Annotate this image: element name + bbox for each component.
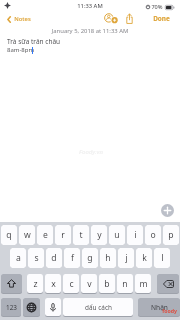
button[interactable]: Nhận — [138, 298, 180, 316]
button[interactable]: u — [109, 225, 125, 245]
staticText: w — [24, 229, 31, 241]
button[interactable]: i — [127, 225, 143, 245]
button[interactable]: g — [82, 248, 98, 268]
other: Shift — [7, 279, 16, 288]
staticText: 8am-8pm — [7, 46, 35, 54]
staticText: 11:33 AM — [77, 2, 103, 10]
button[interactable]: k — [136, 248, 152, 268]
button[interactable]: n — [117, 274, 133, 293]
staticText: e — [43, 229, 48, 241]
other: Switch keyboard — [27, 303, 36, 312]
staticText: l — [161, 252, 164, 264]
button[interactable]: Share — [125, 13, 134, 24]
button[interactable]: dấu cách — [63, 298, 133, 316]
button[interactable]: t — [73, 225, 89, 245]
staticText: x — [51, 278, 56, 290]
button[interactable]: l — [154, 248, 170, 268]
button[interactable]: Notes — [7, 15, 31, 23]
button[interactable]: Switch keyboard — [23, 298, 40, 316]
staticText: m — [139, 278, 148, 290]
button[interactable]: 123 — [1, 298, 21, 316]
staticText: Done — [153, 14, 170, 23]
staticText: k — [142, 252, 147, 264]
staticText: t — [79, 229, 83, 241]
button[interactable]: Add People — [104, 13, 118, 23]
staticText: r — [61, 229, 65, 241]
staticText: z — [33, 278, 38, 290]
button[interactable]: j — [118, 248, 134, 268]
button[interactable]: f — [64, 248, 80, 268]
staticText: u — [114, 229, 120, 241]
staticText: January 5, 2018 at 11:33 AM — [0, 27, 180, 35]
staticText: 123 — [6, 303, 17, 312]
button[interactable]: r — [55, 225, 71, 245]
button[interactable]: y — [91, 225, 107, 245]
button[interactable]: h — [100, 248, 116, 268]
staticText: y — [97, 229, 102, 241]
staticText: 70% — [151, 3, 163, 11]
staticText: Foody.vn — [79, 148, 103, 156]
button[interactable]: Dictation — [45, 298, 61, 316]
staticText: f — [71, 252, 74, 264]
staticText: q — [6, 229, 12, 241]
staticText: o — [150, 229, 156, 241]
button[interactable]: s — [28, 248, 44, 268]
staticText: h — [105, 252, 111, 264]
button[interactable]: v — [81, 274, 97, 293]
button[interactable]: x — [45, 274, 61, 293]
button[interactable]: d — [46, 248, 62, 268]
button[interactable]: Shift — [1, 274, 22, 293]
staticText: c — [69, 278, 74, 290]
button[interactable]: Delete — [157, 274, 179, 293]
button[interactable]: m — [135, 274, 151, 293]
staticText: s — [34, 252, 39, 264]
button[interactable]: p — [163, 225, 179, 245]
button[interactable]: Done — [153, 14, 170, 23]
staticText: Trà sữa trân châu — [7, 37, 61, 46]
other: Delete — [163, 280, 174, 288]
staticText: a — [16, 252, 21, 264]
staticText: d — [51, 252, 57, 264]
button[interactable]: a — [10, 248, 26, 268]
button[interactable]: c — [63, 274, 79, 293]
button[interactable]: w — [19, 225, 35, 245]
staticText: b — [104, 278, 110, 290]
button[interactable]: z — [27, 274, 43, 293]
staticText: i — [134, 229, 137, 241]
staticText: foody — [162, 307, 177, 314]
staticText: Notes — [14, 15, 31, 23]
staticText: Nhận — [151, 303, 168, 312]
button[interactable]: b — [99, 274, 115, 293]
button[interactable]: Add attachment — [161, 204, 174, 217]
staticText: dấu cách — [85, 303, 112, 312]
staticText: p — [168, 229, 174, 241]
staticText: n — [122, 278, 128, 290]
staticText: j — [125, 252, 128, 264]
staticText: v — [87, 278, 92, 290]
button[interactable]: e — [37, 225, 53, 245]
button[interactable]: q — [1, 225, 17, 245]
staticText: g — [87, 252, 93, 264]
button[interactable]: o — [145, 225, 161, 245]
